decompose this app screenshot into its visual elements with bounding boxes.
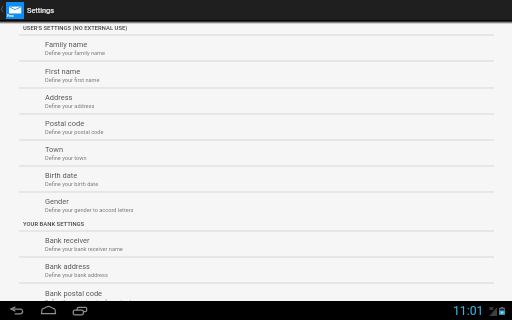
staticText: Family name bbox=[45, 40, 88, 49]
button[interactable]: Back bbox=[6, 303, 26, 318]
staticText: YOUR BANK SETTINGS bbox=[23, 221, 85, 228]
staticText: Birth date bbox=[45, 171, 78, 180]
staticText: 11:01 bbox=[453, 304, 484, 318]
button[interactable]: Bank receiver bbox=[0, 232, 512, 258]
button[interactable]: Bank address bbox=[0, 258, 512, 284]
staticText: Bank address bbox=[45, 262, 90, 271]
button[interactable]: Home bbox=[38, 303, 58, 318]
staticText: Define your town bbox=[45, 155, 87, 162]
staticText: Define your bank address bbox=[45, 272, 108, 279]
button[interactable]: App icon bbox=[6, 2, 24, 19]
button[interactable]: Gender bbox=[0, 193, 512, 219]
staticText: Define your postal code bbox=[45, 129, 104, 136]
staticText: Bank receiver bbox=[45, 236, 90, 245]
button[interactable]: Postal code bbox=[0, 115, 512, 141]
staticText: Free bbox=[7, 14, 14, 18]
button[interactable]: Address bbox=[0, 89, 512, 115]
button[interactable]: Family name bbox=[0, 36, 512, 62]
staticText: Settings bbox=[27, 6, 54, 15]
staticText: First name bbox=[45, 67, 81, 76]
button[interactable]: Bank postal code bbox=[0, 285, 512, 311]
staticText: Address bbox=[45, 93, 73, 102]
staticText: 3G bbox=[489, 307, 494, 311]
button[interactable]: First name bbox=[0, 63, 512, 89]
staticText: Postal code bbox=[45, 119, 85, 128]
button[interactable]: Navigate up bbox=[0, 0, 6, 20]
staticText: Define your address bbox=[45, 103, 95, 110]
staticText: Define your gender to accord letters bbox=[45, 207, 134, 214]
staticText: Define your bank receiver name bbox=[45, 246, 123, 253]
staticText: Define the postal code of your bank bbox=[45, 299, 133, 306]
staticText: Define your family name bbox=[45, 50, 105, 57]
button[interactable]: Recent apps bbox=[70, 303, 90, 318]
staticText: Gender bbox=[45, 197, 69, 206]
staticText: Town bbox=[45, 145, 64, 154]
staticText: Define your first name bbox=[45, 77, 100, 84]
staticText: USER'S SETTINGS (NO EXTERNAL USE) bbox=[23, 25, 128, 32]
button[interactable]: Birth date bbox=[0, 167, 512, 193]
staticText: Define your birth date bbox=[45, 181, 99, 188]
button[interactable]: Town bbox=[0, 141, 512, 167]
staticText: Bank postal code bbox=[45, 289, 103, 298]
